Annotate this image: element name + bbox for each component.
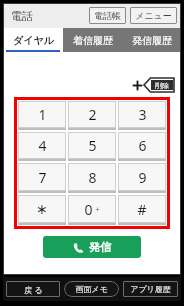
staticText: 8 xyxy=(88,168,97,187)
staticText: 画面メモ xyxy=(75,284,108,294)
button[interactable]: # xyxy=(118,195,166,225)
button[interactable]: 4 xyxy=(18,132,66,161)
staticText: 発信履歴 xyxy=(132,34,172,47)
staticText: 9 xyxy=(138,168,147,187)
other: Plus xyxy=(132,80,143,91)
button[interactable]: 電話帳 xyxy=(89,7,126,24)
button[interactable]: 1 xyxy=(18,101,66,130)
button[interactable]: 3 xyxy=(118,101,166,130)
staticText: 3 xyxy=(138,105,147,124)
button[interactable]: 着信履歴 xyxy=(63,28,122,52)
staticText: メニュー xyxy=(135,10,172,21)
button[interactable]: 6 xyxy=(118,132,166,161)
button[interactable]: 5 xyxy=(68,132,116,161)
staticText: 4 xyxy=(38,136,47,155)
button[interactable]: メニュー xyxy=(130,7,177,24)
button[interactable]: 戻 る xyxy=(6,281,60,297)
button[interactable]: Call xyxy=(43,236,141,258)
staticText: 7 xyxy=(38,168,47,187)
staticText: 発信 xyxy=(89,240,111,254)
button[interactable]: ダイヤル xyxy=(3,28,63,52)
staticText: ダイヤル xyxy=(13,34,54,47)
button[interactable]: 2 xyxy=(68,101,116,130)
staticText: ∗ xyxy=(36,201,48,217)
staticText: 1 xyxy=(38,105,47,124)
other: Call xyxy=(73,242,84,253)
staticText: 削除 xyxy=(155,81,169,90)
staticText: 着信履歴 xyxy=(73,34,113,47)
staticText: 電話帳 xyxy=(94,10,121,21)
staticText: 5 xyxy=(88,136,97,155)
staticText: 戻 る xyxy=(24,284,43,295)
button[interactable]: 9 xyxy=(118,163,166,193)
button[interactable]: 画面メモ xyxy=(64,281,119,297)
button[interactable]: 7 xyxy=(18,163,66,193)
button[interactable]: アプリ履歴 xyxy=(123,281,178,297)
staticText: + xyxy=(95,205,100,215)
staticText: 2 xyxy=(88,105,97,124)
staticText: # xyxy=(137,200,147,219)
button[interactable]: 発信履歴 xyxy=(122,28,181,52)
staticText: 6 xyxy=(138,136,147,155)
button[interactable]: ∗ xyxy=(18,195,66,225)
button[interactable]: 8 xyxy=(68,163,116,193)
staticText: 電話 xyxy=(11,9,33,23)
button[interactable]: 0 xyxy=(68,195,116,225)
button[interactable]: 削除 xyxy=(144,78,174,92)
staticText: アプリ履歴 xyxy=(130,284,171,294)
staticText: 0 xyxy=(84,200,93,219)
